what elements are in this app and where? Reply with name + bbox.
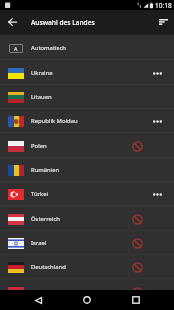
button[interactable]: Back [26, 290, 50, 310]
button[interactable]: Home [75, 290, 99, 310]
button[interactable]: Ukraine [0, 61, 174, 85]
staticText: Türkei [31, 190, 174, 198]
staticText: Polen [31, 142, 174, 150]
button[interactable]: Polen [0, 134, 174, 158]
button[interactable]: Österreich [0, 207, 174, 231]
staticText: Republik Moldau [31, 117, 174, 125]
button[interactable]: Türkei [0, 182, 174, 206]
button[interactable]: More options [149, 65, 165, 81]
other: Blocked [129, 259, 145, 275]
button[interactable]: Recents [124, 290, 148, 310]
staticText: Dänemark [31, 288, 174, 290]
button[interactable]: Litauen [0, 85, 174, 109]
staticText: Israel [31, 239, 174, 247]
button[interactable]: Israel [0, 231, 174, 255]
staticText: A [14, 45, 18, 52]
staticText: Österreich [31, 215, 174, 223]
staticText: 10:18 [155, 1, 172, 10]
button[interactable]: Deutschland [0, 255, 174, 279]
button[interactable]: Back [0, 10, 24, 34]
other: Blocked [129, 235, 145, 251]
button[interactable]: Republik Moldau [0, 109, 174, 133]
button[interactable]: More options [149, 113, 165, 129]
staticText: Deutschland [31, 263, 174, 271]
staticText: Automatisch [31, 44, 174, 52]
staticText: Ukraine [31, 69, 174, 77]
other: Blocked [129, 211, 145, 227]
button[interactable]: More options [149, 186, 165, 202]
other: Blocked [129, 284, 145, 290]
button[interactable]: Sort [152, 10, 174, 34]
staticText: Auswahl des Landes [31, 18, 95, 27]
button[interactable]: A [0, 36, 174, 60]
button[interactable]: Dänemark [0, 280, 174, 290]
other: Blocked [129, 138, 145, 154]
button[interactable]: Rumänien [0, 158, 174, 182]
staticText: Rumänien [31, 166, 174, 174]
staticText: Litauen [31, 93, 174, 101]
